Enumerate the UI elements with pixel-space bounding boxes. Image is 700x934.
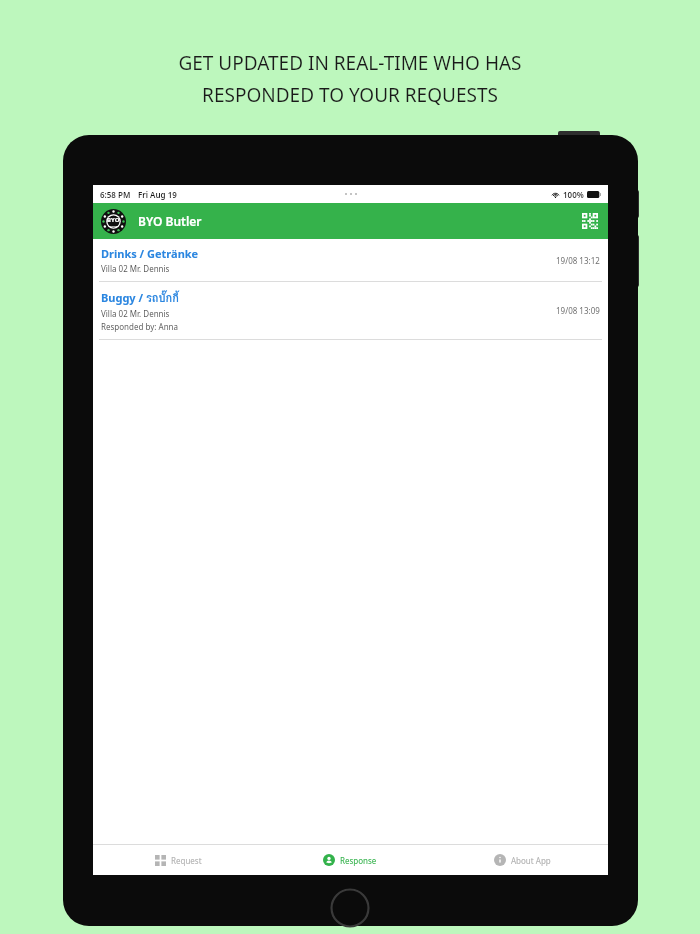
staticText: Request (171, 855, 202, 866)
staticText: Villa 02 Mr. Dennis (101, 308, 170, 319)
staticText: 6:58 PM (100, 189, 131, 200)
staticText: 19/08 13:12 (556, 255, 600, 266)
button[interactable]: Scan QR code (580, 211, 600, 231)
button[interactable]: Response (264, 854, 436, 866)
staticText: GET UPDATED IN REAL-TIME WHO HAS (178, 50, 522, 76)
staticText: 19/08 13:09 (556, 305, 600, 316)
staticText: BYO Butler (138, 213, 202, 229)
staticText: Response (340, 855, 377, 866)
button[interactable]: Request (93, 855, 264, 866)
staticText: BYO (107, 216, 120, 224)
staticText: Villa 02 Mr. Dennis (101, 263, 170, 274)
button[interactable]: About App (436, 854, 608, 866)
staticText: Responded by: Anna (101, 321, 179, 332)
staticText: Fri Aug 19 (138, 189, 177, 200)
staticText: 100% (563, 189, 584, 200)
button[interactable]: Home (330, 888, 370, 928)
staticText: About App (511, 855, 551, 866)
button[interactable]: Drinks / Getränke (93, 239, 608, 281)
staticText: Buggy / รถบั๊กกี้ (101, 289, 179, 306)
button[interactable]: Buggy / รถบั๊กกี้ (93, 282, 608, 339)
staticText: BUTLER (109, 224, 119, 227)
staticText: RESPONDED TO YOUR REQUESTS (202, 82, 498, 108)
staticText: Drinks / Getränke (101, 246, 199, 261)
